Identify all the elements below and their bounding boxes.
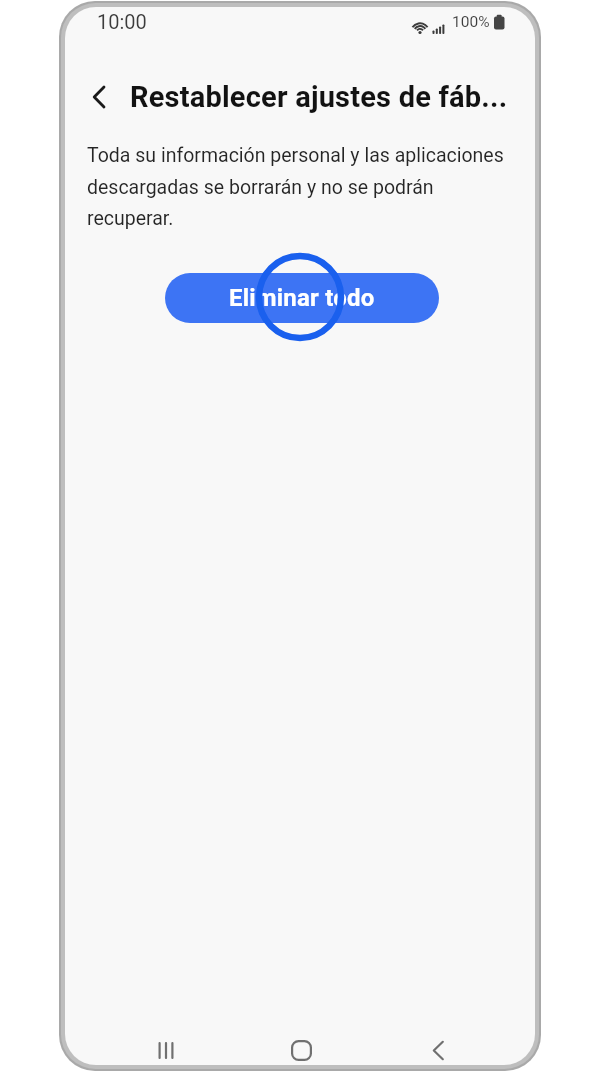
staticText: 10:00 bbox=[97, 10, 147, 33]
button[interactable]: Eliminar todo bbox=[165, 273, 439, 323]
staticText: Restablecer ajustes de fáb... bbox=[130, 80, 508, 114]
button[interactable] bbox=[77, 75, 121, 119]
staticText: 100% bbox=[452, 13, 490, 31]
button[interactable] bbox=[277, 1026, 325, 1065]
button[interactable] bbox=[414, 1026, 462, 1065]
staticText: Eliminar todo bbox=[229, 284, 375, 312]
button[interactable] bbox=[142, 1026, 190, 1065]
staticText: Toda su información personal y las aplic… bbox=[87, 144, 504, 229]
